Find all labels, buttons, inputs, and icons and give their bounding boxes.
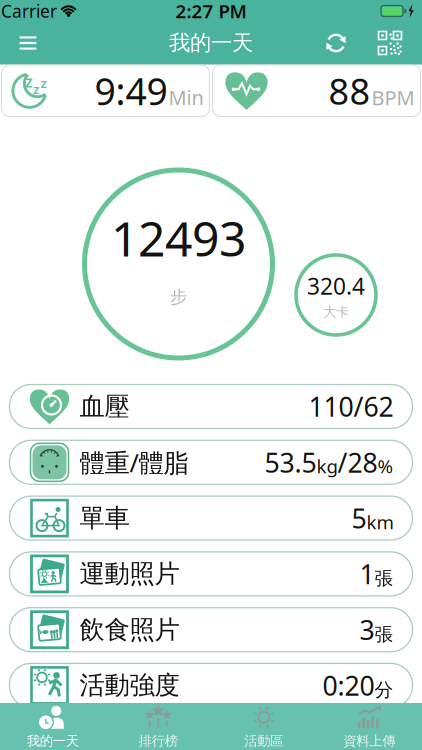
button[interactable]: 我的一天 xyxy=(3,704,103,750)
staticText: 血壓 xyxy=(79,391,129,422)
staticText: 5 xyxy=(351,500,366,536)
staticText: 張 xyxy=(374,567,393,590)
staticText: 資料上傳 xyxy=(343,733,395,749)
staticText: 排行榜 xyxy=(139,733,178,749)
staticText: z xyxy=(40,74,46,92)
staticText: 3 xyxy=(359,612,374,647)
staticText: 飲食照片 xyxy=(79,614,179,645)
button[interactable]: 活動區 xyxy=(214,704,314,750)
staticText: 步 xyxy=(170,286,187,308)
staticText: 單車 xyxy=(79,502,129,534)
button[interactable]: 飲食照片 xyxy=(9,608,412,652)
staticText: 體重/體脂 xyxy=(79,445,188,479)
staticText: BPM xyxy=(371,84,414,111)
staticText: 53.5 xyxy=(264,445,316,480)
button[interactable]: z xyxy=(1,65,209,116)
staticText: 活動區 xyxy=(244,733,283,749)
staticText: 活動強度 xyxy=(79,670,179,701)
button[interactable]: 血壓 xyxy=(9,384,412,428)
button[interactable]: 活動強度 xyxy=(9,663,412,707)
button[interactable]: QR code xyxy=(373,26,407,60)
staticText: 1 xyxy=(359,556,374,592)
staticText: 110/62 xyxy=(308,389,393,424)
staticText: z xyxy=(33,80,39,98)
button[interactable]: 排行榜 xyxy=(108,704,208,750)
staticText: 12493 xyxy=(111,206,246,270)
button[interactable]: Menu xyxy=(10,25,46,61)
button[interactable]: Refresh xyxy=(319,26,353,60)
staticText: 88 xyxy=(328,67,370,115)
staticText: 張 xyxy=(374,623,393,646)
staticText: 分 xyxy=(374,679,393,702)
staticText: 我的一天 xyxy=(169,30,253,56)
staticText: 大卡 xyxy=(323,304,349,320)
staticText: 9:49 xyxy=(94,66,167,116)
button[interactable]: 資料上傳 xyxy=(319,704,419,750)
staticText: Carrier xyxy=(1,0,57,22)
button[interactable]: 體重/體脂 xyxy=(9,440,412,484)
staticText: % xyxy=(377,454,393,478)
button[interactable]: 88 xyxy=(212,65,420,116)
staticText: /28 xyxy=(337,445,377,480)
staticText: 320.4 xyxy=(307,271,365,301)
staticText: 0:20 xyxy=(322,668,374,703)
staticText: z xyxy=(25,71,33,92)
staticText: 運動照片 xyxy=(79,558,179,589)
button[interactable]: 運動照片 xyxy=(9,552,412,596)
staticText: Min xyxy=(168,84,203,111)
staticText: kg xyxy=(316,454,337,478)
staticText: 我的一天 xyxy=(27,733,79,749)
staticText: km xyxy=(366,509,393,534)
staticText: 2:27 PM xyxy=(175,0,246,23)
button[interactable]: 單車 xyxy=(9,496,412,540)
